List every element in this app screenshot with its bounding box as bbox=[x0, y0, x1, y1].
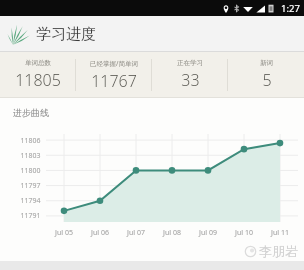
staticText: Jul 10 bbox=[235, 228, 253, 238]
staticText: 进步曲线 bbox=[13, 107, 49, 118]
staticText: 1:27 bbox=[281, 2, 300, 15]
button[interactable]: 正在学习 bbox=[152, 52, 228, 98]
staticText: 11791 bbox=[20, 211, 41, 221]
staticText: 5 bbox=[262, 69, 272, 91]
staticText: Jul 09 bbox=[199, 228, 217, 238]
staticText: 11767 bbox=[91, 70, 137, 92]
staticText: Jul 11 bbox=[271, 228, 289, 238]
button[interactable]: 新词 bbox=[228, 52, 304, 98]
button[interactable]: App logo bbox=[3, 19, 33, 49]
staticText: 正在学习 bbox=[177, 59, 203, 67]
staticText: 11794 bbox=[20, 196, 41, 206]
staticText: 李朋岩 bbox=[259, 243, 298, 259]
staticText: Jul 08 bbox=[163, 228, 181, 238]
staticText: 新词 bbox=[260, 59, 273, 67]
button[interactable]: 已经掌握/简单词 bbox=[76, 52, 152, 98]
staticText: 33 bbox=[181, 69, 200, 91]
staticText: 11805 bbox=[15, 69, 61, 91]
staticText: Jul 07 bbox=[127, 228, 145, 238]
staticText: 学习进度 bbox=[36, 25, 96, 44]
staticText: Jul 06 bbox=[91, 228, 109, 238]
staticText: 单词总数 bbox=[25, 59, 51, 67]
staticText: 11803 bbox=[20, 151, 41, 161]
staticText: 11800 bbox=[20, 166, 41, 176]
staticText: 11806 bbox=[20, 136, 41, 146]
staticText: 11797 bbox=[20, 181, 41, 191]
staticText: 已经掌握/简单词 bbox=[90, 59, 138, 68]
button[interactable]: 单词总数 bbox=[0, 52, 76, 98]
staticText: Jul 05 bbox=[55, 228, 73, 238]
